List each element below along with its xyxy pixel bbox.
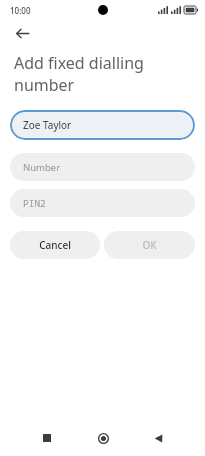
staticText: Add fixed dialling number — [14, 52, 191, 96]
button[interactable]: Zoe Taylor — [10, 110, 195, 140]
staticText: Cancel — [39, 238, 71, 252]
button[interactable]: OK — [104, 231, 195, 259]
staticText: Zoe Taylor — [23, 118, 72, 132]
button[interactable]: Number — [10, 153, 195, 181]
button[interactable]: Cancel — [10, 231, 100, 259]
button[interactable]: Back — [145, 425, 171, 451]
staticText: Number — [23, 161, 61, 174]
staticText: 10:00 — [10, 5, 31, 16]
staticText: OK — [142, 238, 157, 252]
button[interactable]: Recents — [34, 425, 60, 451]
button[interactable]: PIN2 — [10, 189, 195, 217]
staticText: PIN2 — [23, 197, 46, 210]
button[interactable]: Back — [8, 20, 36, 46]
button[interactable]: Home — [90, 425, 116, 451]
